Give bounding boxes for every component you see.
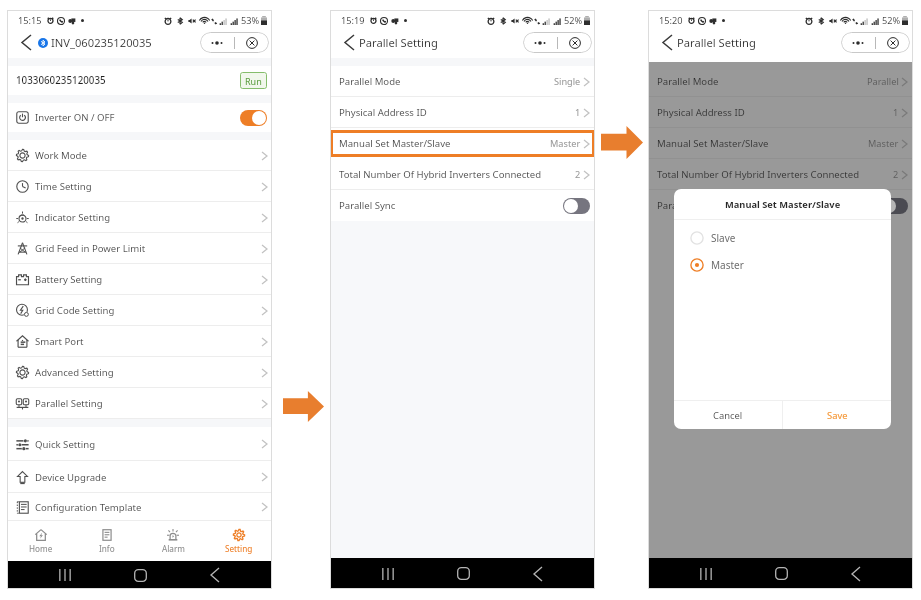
button[interactable]: Parallel Mode [330, 66, 595, 97]
staticText: Grid Feed in Power Limit [35, 242, 146, 255]
staticText: Cancel [713, 409, 743, 422]
staticText: Single [554, 75, 581, 88]
button[interactable]: Total Number Of Hybrid Inverters Connect… [648, 159, 913, 190]
button[interactable]: Advanced Setting [7, 357, 272, 388]
staticText: Master [550, 137, 581, 150]
staticText: 53% [241, 14, 260, 27]
staticText: 1 [893, 106, 899, 119]
staticText: Quick Setting [35, 438, 96, 451]
button[interactable]: Home [117, 561, 163, 589]
staticText: Grid Code Setting [35, 304, 115, 317]
button[interactable]: Smart Port [7, 326, 272, 357]
staticText: Total Number Of Hybrid Inverters Connect… [657, 168, 860, 181]
staticText: Info [99, 543, 115, 554]
button[interactable]: Cancel [674, 401, 782, 429]
button[interactable]: Recent apps [42, 561, 88, 589]
button[interactable]: Parallel Mode [648, 66, 913, 97]
button[interactable]: Home [440, 558, 486, 589]
button[interactable]: Save [783, 401, 891, 429]
button[interactable]: Parallel Setting [7, 388, 272, 419]
staticText: Indicator Setting [35, 211, 111, 224]
button[interactable]: Back [192, 561, 238, 589]
button[interactable]: Info [74, 521, 140, 561]
button[interactable]: 1033060235120035 [7, 66, 272, 95]
button[interactable]: Manual Set Master/Slave [330, 128, 595, 159]
button[interactable]: Parallel Sync [648, 190, 913, 221]
staticText: Battery Setting [35, 273, 103, 286]
staticText: Parallel Mode [657, 75, 719, 88]
staticText: Configuration Template [35, 501, 142, 514]
staticText: Parallel Setting [359, 35, 438, 50]
staticText: Device Upgrade [35, 471, 107, 484]
staticText: Alarm [162, 543, 185, 554]
button[interactable]: Master [674, 257, 891, 273]
button[interactable]: Recent apps [683, 558, 729, 589]
staticText: 15:20 [659, 14, 683, 27]
button[interactable]: Total Number Of Hybrid Inverters Connect… [330, 159, 595, 190]
button[interactable]: Manual Set Master/Slave [648, 128, 913, 159]
button[interactable]: Indicator Setting [7, 202, 272, 233]
staticText: Parallel Setting [35, 397, 103, 410]
staticText: Total Number Of Hybrid Inverters Connect… [339, 168, 542, 181]
button[interactable]: Close [876, 32, 910, 53]
staticText: Inverter ON / OFF [35, 111, 115, 124]
button[interactable]: Home [7, 521, 74, 561]
button[interactable]: Home [758, 558, 804, 589]
staticText: Parallel Sync [339, 199, 396, 212]
staticText: 15:15 [18, 14, 42, 27]
staticText: Manual Set Master/Slave [339, 137, 451, 150]
button[interactable]: Parallel sync toggle [881, 198, 908, 214]
button[interactable]: Slave [674, 230, 891, 246]
button[interactable]: Back [657, 32, 677, 53]
staticText: Parallel [867, 75, 899, 88]
button[interactable]: Back [515, 558, 561, 589]
button[interactable]: Alarm [140, 521, 206, 561]
staticText: Manual Set Master/Slave [725, 198, 841, 211]
staticText: Run [245, 75, 262, 87]
button[interactable]: Parallel Sync [330, 190, 595, 221]
button[interactable]: Work Mode [7, 140, 272, 171]
staticText: Parallel Setting [677, 35, 756, 50]
button[interactable]: Grid Feed in Power Limit [7, 233, 272, 264]
staticText: Parallel Mode [339, 75, 401, 88]
staticText: 15:19 [341, 14, 365, 27]
button[interactable]: Inverter power toggle [240, 110, 267, 126]
button[interactable]: Physical Address ID [648, 97, 913, 128]
staticText: 2 [893, 168, 899, 181]
staticText: Parallel Sync [657, 199, 714, 212]
button[interactable]: Back [833, 558, 879, 589]
button[interactable]: Close [235, 32, 269, 53]
staticText: 52% [564, 14, 583, 27]
button[interactable]: More options [523, 32, 557, 53]
button[interactable]: Back [16, 32, 36, 53]
button[interactable]: Run [240, 72, 267, 89]
button[interactable]: More options [200, 32, 234, 53]
button[interactable]: Close [558, 32, 592, 53]
staticText: Physical Address ID [339, 106, 427, 119]
button[interactable]: Time Setting [7, 171, 272, 202]
button[interactable]: Back [339, 32, 359, 53]
staticText: 52% [882, 14, 901, 27]
staticText: Physical Address ID [657, 106, 745, 119]
staticText: Setting [225, 543, 253, 554]
staticText: Time Setting [35, 180, 92, 193]
staticText: Manual Set Master/Slave [657, 137, 769, 150]
staticText: 1 [575, 106, 581, 119]
button[interactable]: Parallel sync toggle [563, 198, 590, 214]
button[interactable]: Device Upgrade [7, 461, 272, 493]
button[interactable]: More options [841, 32, 875, 53]
button[interactable]: Quick Setting [7, 427, 272, 461]
button[interactable]: Setting [206, 521, 272, 561]
button[interactable]: Grid Code Setting [7, 295, 272, 326]
button[interactable]: Recent apps [365, 558, 411, 589]
staticText: Master [868, 137, 899, 150]
staticText: Save [827, 409, 848, 422]
staticText: Slave [711, 231, 736, 245]
button[interactable]: Inverter ON / OFF [7, 103, 272, 132]
staticText: Master [711, 258, 744, 272]
staticText: Home [29, 543, 53, 554]
staticText: 1033060235120035 [16, 74, 106, 87]
button[interactable]: Physical Address ID [330, 97, 595, 128]
button[interactable]: Battery Setting [7, 264, 272, 295]
button[interactable]: Configuration Template [7, 493, 272, 521]
